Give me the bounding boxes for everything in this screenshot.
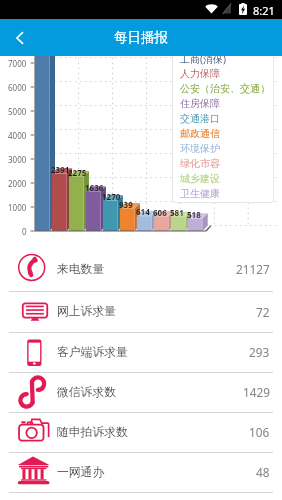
staticText: 每日播报: [114, 29, 168, 46]
staticText: 绿化市容: [180, 157, 220, 170]
staticText: 来电数量: [57, 262, 105, 277]
staticText: 人力保障: [180, 67, 220, 80]
button[interactable]: 微信诉求数: [0, 372, 282, 412]
staticText: 21127: [236, 261, 270, 277]
staticText: 交通港口: [180, 112, 220, 125]
staticText: 939: [119, 199, 133, 210]
staticText: 随申拍诉求数: [57, 425, 128, 440]
staticText: 1270: [102, 191, 121, 202]
staticText: 3000: [8, 154, 27, 165]
button[interactable]: Back: [0, 19, 40, 56]
staticText: 网上诉求量: [57, 304, 116, 319]
staticText: 微信诉求数: [57, 385, 116, 400]
button[interactable]: 网上诉求量: [0, 291, 282, 332]
staticText: 106: [249, 424, 270, 440]
staticText: 环境保护: [180, 142, 220, 155]
staticText: 614: [136, 206, 150, 217]
staticText: 卫生健康: [180, 187, 220, 200]
staticText: 1429: [243, 384, 270, 400]
staticText: 581: [170, 207, 184, 218]
staticText: 8:21: [253, 3, 275, 18]
staticText: 2391: [51, 164, 70, 175]
staticText: 客户端诉求量: [57, 345, 128, 360]
staticText: 邮政通信: [180, 127, 220, 140]
button[interactable]: 客户端诉求量: [0, 332, 282, 372]
button[interactable]: 随申拍诉求数: [0, 412, 282, 452]
staticText: 48: [256, 464, 270, 480]
staticText: 住房保障: [180, 97, 220, 110]
staticText: 1000: [8, 202, 27, 213]
staticText: 城乡建设: [180, 172, 220, 185]
staticText: 公安（治安、交通）: [180, 82, 270, 95]
button[interactable]: 来电数量: [0, 247, 282, 291]
staticText: 2275: [68, 167, 87, 178]
staticText: 工商(消保): [180, 52, 226, 66]
staticText: 1636: [85, 182, 104, 193]
staticText: 4000: [8, 130, 27, 141]
staticText: 一网通办: [57, 465, 105, 480]
staticText: 7000: [8, 58, 27, 69]
staticText: 5000: [8, 106, 27, 117]
staticText: 72: [256, 304, 270, 320]
staticText: 518: [187, 209, 201, 220]
staticText: 606: [153, 207, 167, 218]
staticText: 6000: [8, 82, 27, 93]
staticText: 293: [249, 344, 270, 360]
button[interactable]: 一网通办: [0, 452, 282, 492]
staticText: 2000: [8, 178, 27, 189]
staticText: 0: [22, 226, 27, 237]
